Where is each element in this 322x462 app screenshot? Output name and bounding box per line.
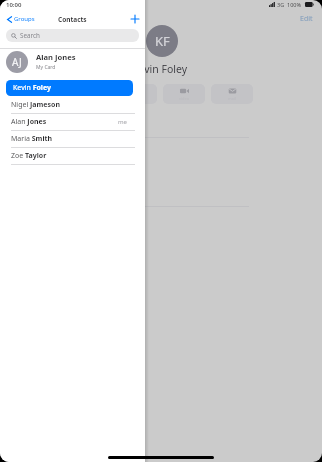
button[interactable]: AJ bbox=[0, 48, 145, 75]
button[interactable]: mail bbox=[211, 84, 253, 104]
button[interactable]: video bbox=[163, 84, 205, 104]
button[interactable]: Zoe Taylor bbox=[0, 148, 145, 164]
staticText: 3G bbox=[277, 1, 285, 8]
button[interactable]: Alan Jones bbox=[0, 114, 145, 130]
button[interactable]: Edit bbox=[300, 14, 313, 24]
staticText: Zoe Taylor bbox=[11, 151, 47, 161]
staticText: Alan Jones bbox=[36, 52, 76, 62]
staticText: KF bbox=[155, 32, 170, 50]
staticText: Contacts bbox=[58, 15, 87, 24]
button[interactable]: Maria Smith bbox=[0, 131, 145, 147]
button[interactable]: Kevin Foley bbox=[6, 80, 133, 96]
staticText: Alan Jones bbox=[11, 117, 47, 127]
button[interactable]: Nigel Jameson bbox=[0, 97, 145, 113]
staticText: Groups bbox=[14, 15, 35, 23]
button[interactable]: Groups bbox=[7, 15, 35, 23]
button[interactable]: Add contact bbox=[130, 14, 140, 24]
staticText: AJ bbox=[12, 55, 22, 69]
staticText: My Card bbox=[36, 64, 56, 71]
staticText: 100% bbox=[287, 1, 302, 8]
staticText: Nigel Jameson bbox=[11, 100, 60, 110]
staticText: Maria Smith bbox=[11, 134, 53, 144]
staticText: Kevin Foley bbox=[13, 83, 51, 93]
staticText: 10:00 bbox=[6, 1, 22, 9]
staticText: Search bbox=[20, 31, 40, 40]
staticText: me bbox=[118, 118, 127, 126]
button[interactable]: Search bbox=[6, 29, 139, 42]
staticText: Kevin Foley bbox=[132, 62, 188, 76]
button[interactable]: message bbox=[115, 84, 157, 104]
